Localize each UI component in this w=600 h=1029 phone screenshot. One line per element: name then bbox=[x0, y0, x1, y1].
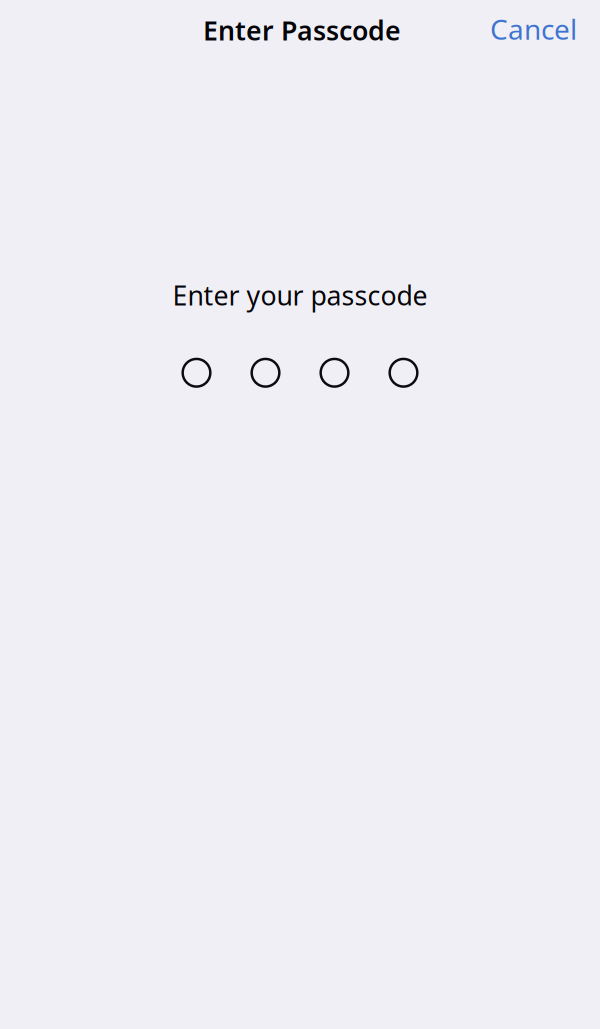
staticText: Enter Passcode bbox=[203, 12, 401, 48]
staticText: Cancel bbox=[490, 10, 577, 48]
staticText: Enter your passcode bbox=[172, 277, 427, 313]
button[interactable]: Cancel bbox=[480, 4, 587, 54]
